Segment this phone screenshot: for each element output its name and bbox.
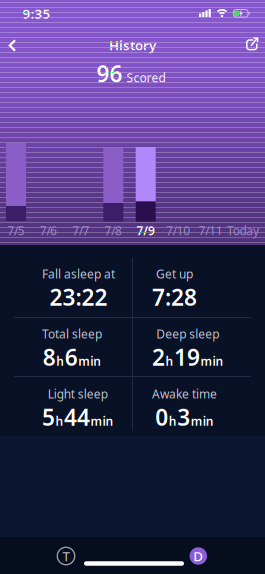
staticText: 9:35 [22,5,50,22]
staticText: min [78,353,101,369]
staticText: 44 [64,402,90,432]
button[interactable]: 7/11 [189,220,233,240]
staticText: 7/5 [7,222,25,238]
staticText: 0 [155,402,168,432]
staticText: h [165,353,173,369]
staticText: min [90,413,113,429]
button[interactable]: Today [221,220,265,240]
staticText: History [109,36,156,54]
button[interactable] [238,30,265,58]
staticText: min [191,413,214,429]
staticText: 7/8 [105,222,122,238]
staticText: 7/6 [40,222,57,238]
staticText: 7/10 [166,222,190,238]
staticText: Get up [156,266,193,282]
staticText: 7/11 [198,222,223,238]
button[interactable]: 7/5 [0,220,38,240]
button[interactable]: 7/8 [91,220,135,240]
staticText: h [169,413,177,429]
staticText: Deep sleep [156,326,219,342]
staticText: h [56,353,64,369]
staticText: 6 [65,342,78,372]
button[interactable]: 7/7 [59,220,103,240]
button[interactable]: T [54,544,78,568]
staticText: 7/9 [136,222,155,238]
staticText: Total sleep [42,326,102,342]
button[interactable]: D [186,544,210,568]
staticText: 23:22 [49,282,107,312]
staticText: Fall asleep at [42,266,115,282]
staticText: Awake time [152,386,217,402]
staticText: T [62,547,69,565]
staticText: 5 [42,402,55,432]
staticText: 19 [174,342,200,372]
staticText: 7:28 [152,282,197,312]
staticText: min [200,353,223,369]
staticText: 7/7 [72,222,90,238]
staticText: D [193,547,203,565]
staticText: 8 [43,342,56,372]
staticText: 2 [152,342,165,372]
staticText: Light sleep [48,386,108,402]
button[interactable]: 7/10 [156,220,200,240]
button[interactable]: 7/9 [124,220,168,240]
button[interactable] [0,31,28,59]
staticText: Today [227,222,259,238]
staticText: Scored [126,70,165,86]
staticText: h [55,413,63,429]
staticText: 3 [177,402,190,432]
button[interactable]: 7/6 [26,220,70,240]
staticText: 96 [96,58,122,88]
